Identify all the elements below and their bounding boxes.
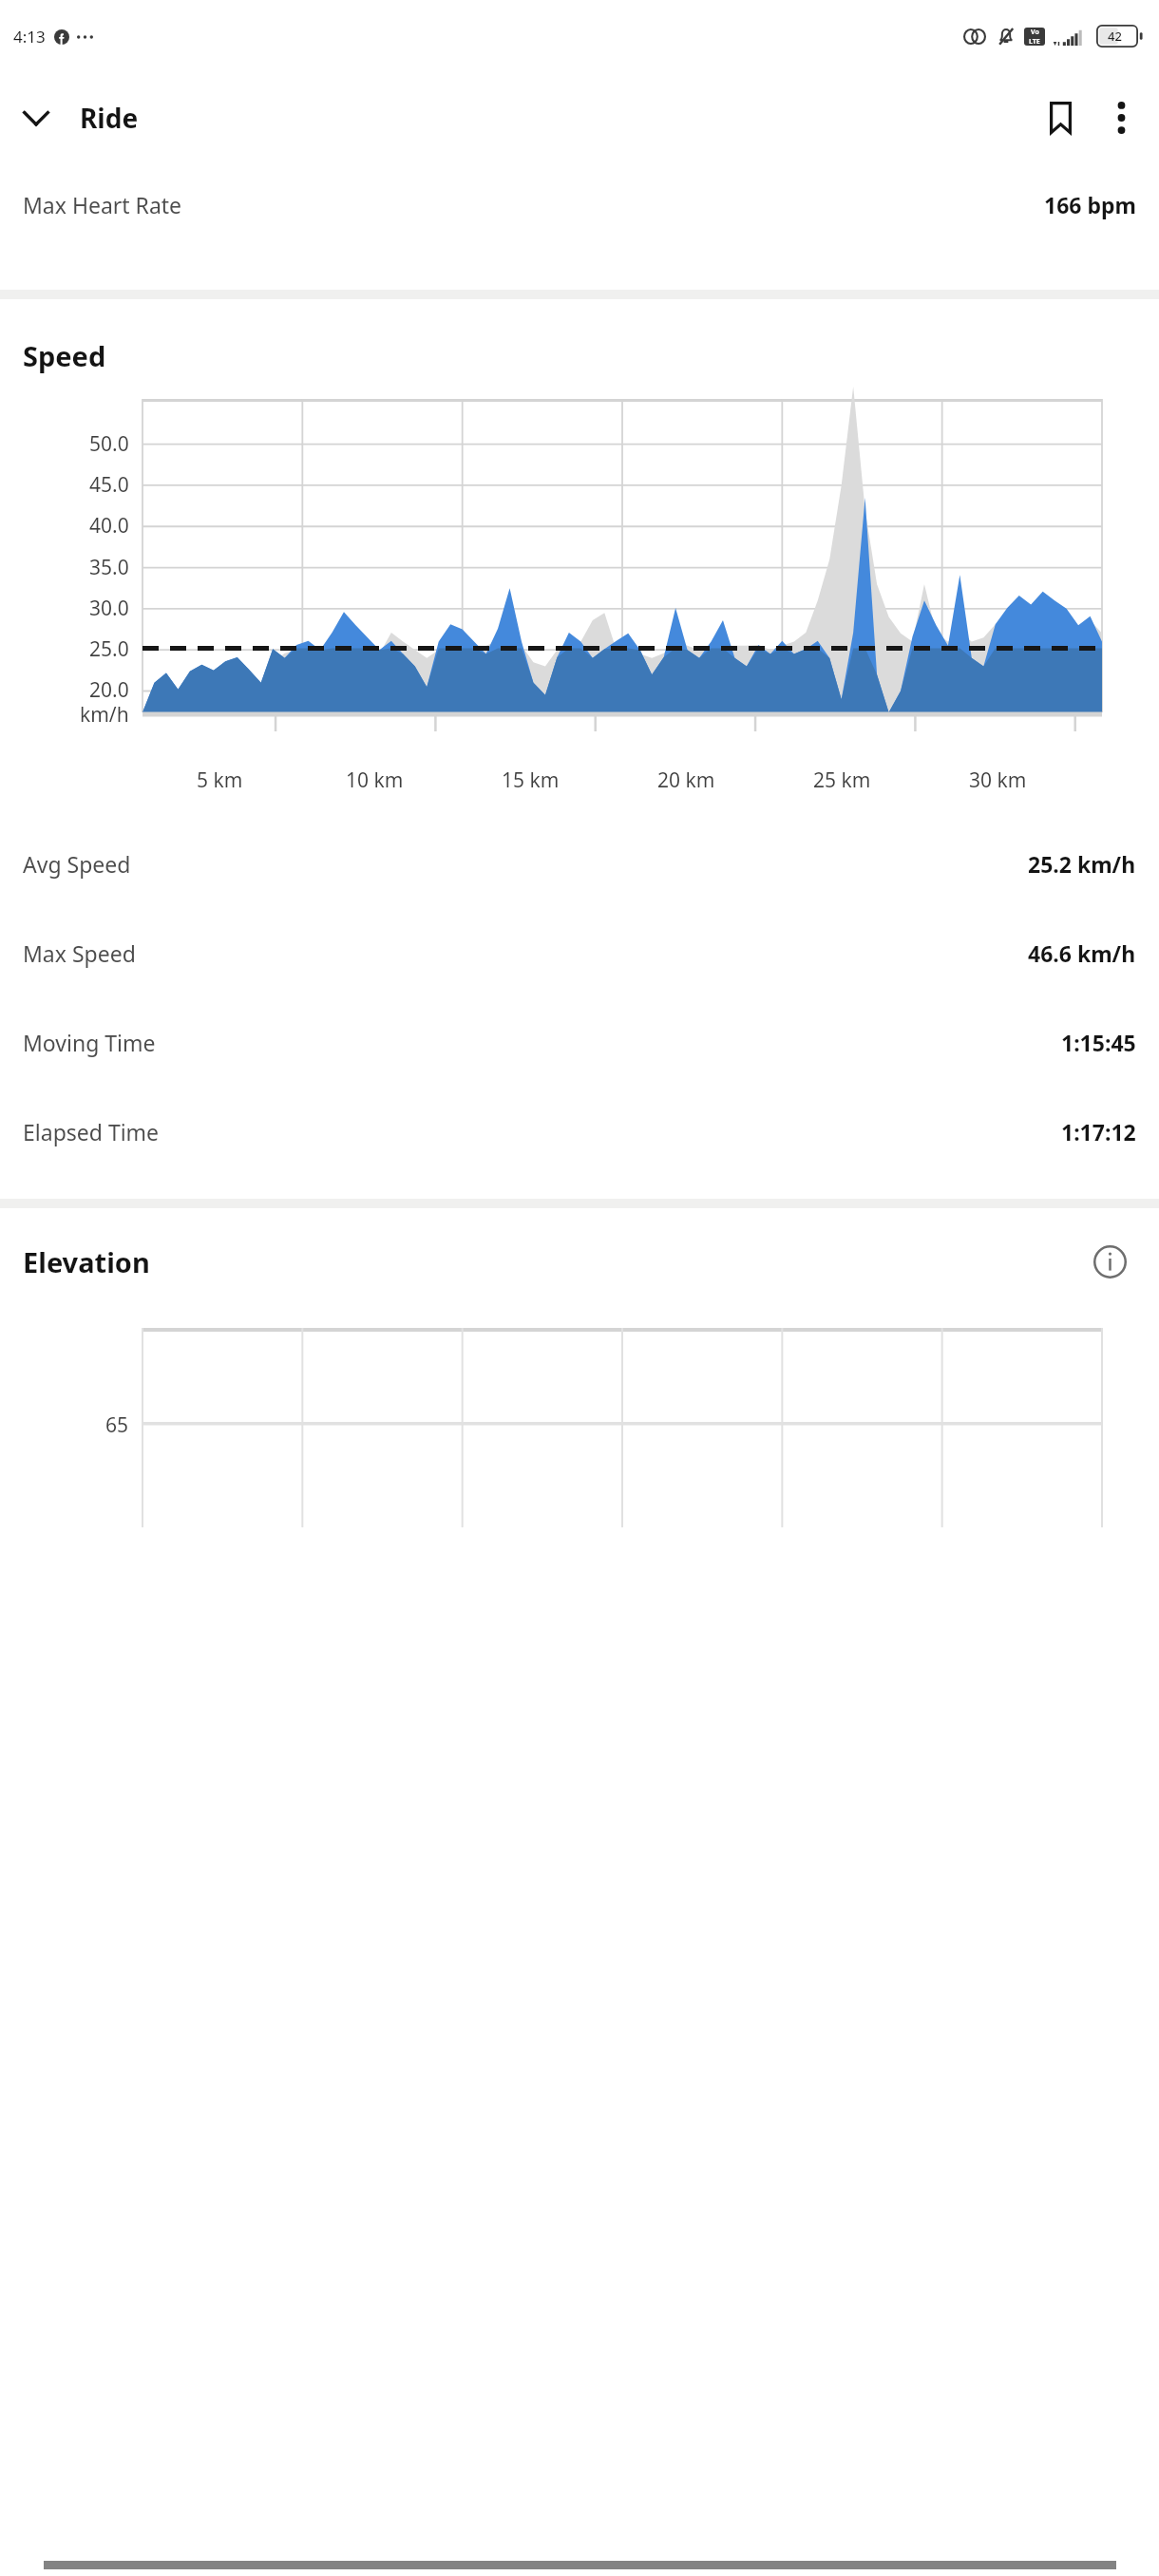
button[interactable]: Max Heart Rate [0,163,1159,245]
staticText: 4:13 [13,26,46,47]
staticText: Speed [23,337,106,374]
staticText: 5 km [197,767,243,794]
staticText: Max Speed [23,938,136,968]
staticText: Elapsed Time [23,1117,160,1146]
staticText: Max Heart Rate [23,190,182,219]
staticText: 50.0 [89,430,129,458]
staticText: Ride [80,100,139,136]
staticText: 46.6 km/h [1028,938,1136,968]
staticText: 42 [1108,28,1122,45]
button[interactable]: Collapse [8,89,65,146]
staticText: 166 bpm [1044,190,1136,219]
staticText: 25.0 [89,635,129,663]
staticText: 15 km [502,767,560,794]
staticText: 10 km [346,767,404,794]
button[interactable]: Elapsed Time [0,1087,1159,1176]
staticText: 65 [105,1411,129,1439]
button[interactable]: More options [1091,87,1151,148]
button[interactable]: Bookmark [1030,87,1091,148]
button[interactable]: Elevation info [1085,1237,1134,1286]
button[interactable]: Moving Time [0,997,1159,1087]
staticText: 35.0 [89,554,129,581]
staticText: 25 km [813,767,871,794]
staticText: LTE [1029,37,1040,46]
staticText: km/h [80,701,129,729]
staticText: Avg Speed [23,849,131,879]
staticText: 25.2 km/h [1028,849,1136,879]
button[interactable]: Max Speed [0,908,1159,997]
staticText: 1:15:45 [1061,1028,1136,1057]
staticText: Vo [1031,28,1039,37]
staticText: Elevation [23,1243,150,1280]
staticText: 30.0 [89,595,129,622]
staticText: 40.0 [89,512,129,540]
staticText: Moving Time [23,1028,156,1057]
staticText: 1:17:12 [1061,1117,1136,1146]
staticText: 45.0 [89,471,129,499]
staticText: 30 km [969,767,1027,794]
button[interactable]: Avg Speed [0,819,1159,908]
staticText: 20.0 [89,676,129,704]
staticText: 20 km [657,767,715,794]
